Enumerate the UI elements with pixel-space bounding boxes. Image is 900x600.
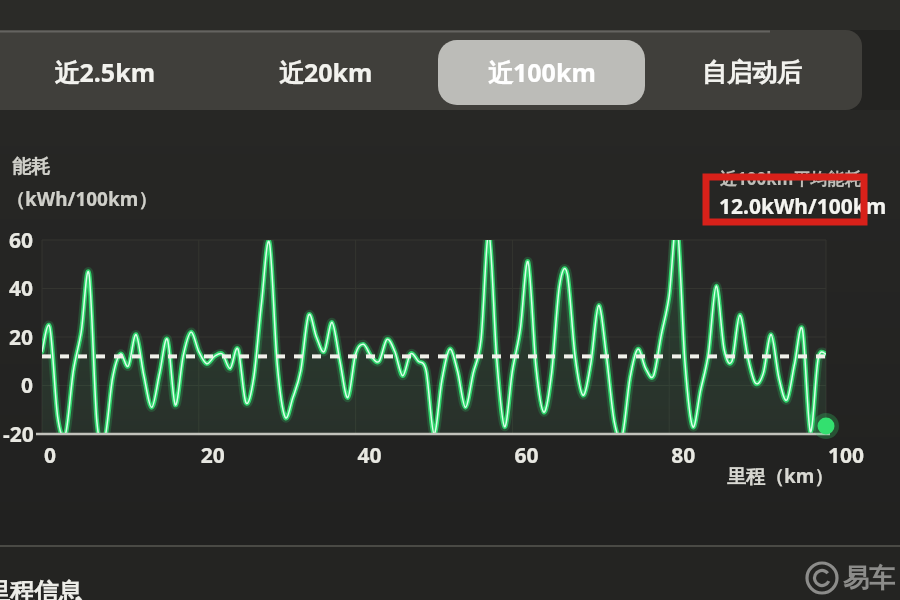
button[interactable]: 近2.5km xyxy=(0,30,218,110)
button[interactable]: 里程信息 xyxy=(0,548,320,600)
button[interactable]: 自启动后 xyxy=(645,30,862,110)
button[interactable]: 近20km xyxy=(218,30,438,110)
button[interactable]: 近100km selected xyxy=(438,40,645,105)
